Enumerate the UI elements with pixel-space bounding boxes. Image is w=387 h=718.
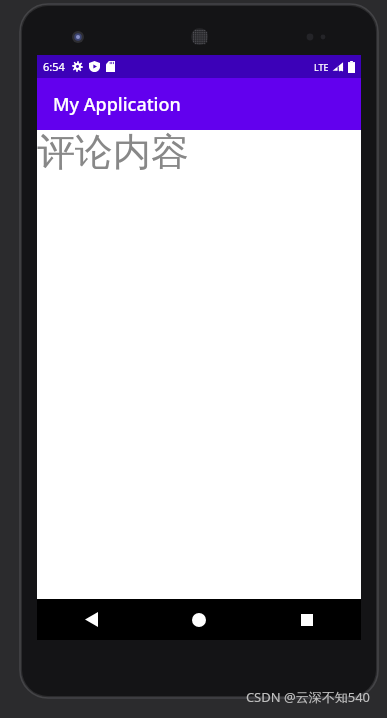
staticText: LTE — [314, 61, 329, 73]
staticText: 评论内容 — [37, 128, 189, 176]
button[interactable]: Home — [145, 599, 253, 640]
staticText: CSDN @云深不知540 — [245, 688, 370, 706]
staticText: 6:54 — [43, 59, 65, 74]
staticText: My Application — [53, 92, 181, 117]
button[interactable]: Back — [37, 599, 145, 640]
button[interactable]: Recent apps — [253, 599, 361, 640]
